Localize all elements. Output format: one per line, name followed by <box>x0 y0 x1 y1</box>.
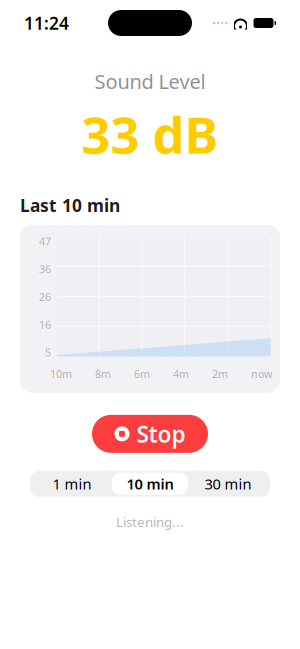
staticText: Last 10 min <box>20 194 120 217</box>
staticText: 4m <box>173 367 189 381</box>
staticText: 26 <box>39 290 51 304</box>
staticText: 11:24 <box>24 11 69 34</box>
staticText: 47 <box>39 234 51 248</box>
staticText: 1 min <box>52 474 91 494</box>
staticText: 8m <box>95 367 111 381</box>
staticText: 16 <box>39 317 51 332</box>
staticText: Sound Level <box>94 68 205 95</box>
button[interactable]: 1 min <box>32 471 112 497</box>
button[interactable]: 30 min <box>188 471 268 497</box>
staticText: 2m <box>212 367 228 381</box>
button[interactable]: Stop <box>92 415 208 453</box>
button[interactable]: 10 min <box>112 473 188 495</box>
staticText: 6m <box>134 367 150 381</box>
staticText: 33 dB <box>81 101 218 168</box>
staticText: Listening... <box>116 513 184 531</box>
staticText: 30 min <box>204 474 251 494</box>
staticText: Stop <box>136 419 185 449</box>
staticText: now <box>251 367 272 381</box>
staticText: 5 <box>45 345 51 359</box>
staticText: 10 min <box>126 474 173 494</box>
staticText: 36 <box>39 262 51 276</box>
staticText: 10m <box>50 367 72 381</box>
